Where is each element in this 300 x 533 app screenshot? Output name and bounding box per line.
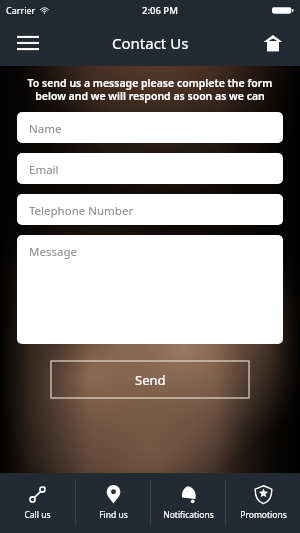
staticText: 2:06 PM [142,4,178,17]
staticText: Email [29,162,59,178]
button[interactable]: Name [17,112,283,143]
button[interactable]: Telephone Number [17,194,283,225]
button[interactable]: Find us [76,473,150,533]
button[interactable]: Menu [10,25,46,61]
button[interactable]: Promotions [226,473,300,533]
button[interactable]: Call us [0,473,75,533]
staticText: Notifications [163,509,214,521]
staticText: Contact Us [112,33,189,53]
staticText: Name [29,121,62,137]
staticText: Carrier [6,4,36,16]
button[interactable]: Email [17,153,283,184]
button[interactable]: Message [17,235,283,344]
staticText: Call us [24,509,51,521]
staticText: To send us a message please complete the… [18,76,282,103]
button[interactable]: Notifications [151,473,225,533]
staticText: Message [29,244,77,260]
button[interactable]: Send [51,361,249,398]
staticText: Send [135,371,166,389]
button[interactable]: Home [256,26,290,60]
staticText: Telephone Number [29,203,134,219]
staticText: Find us [99,509,128,521]
staticText: Promotions [240,509,287,521]
